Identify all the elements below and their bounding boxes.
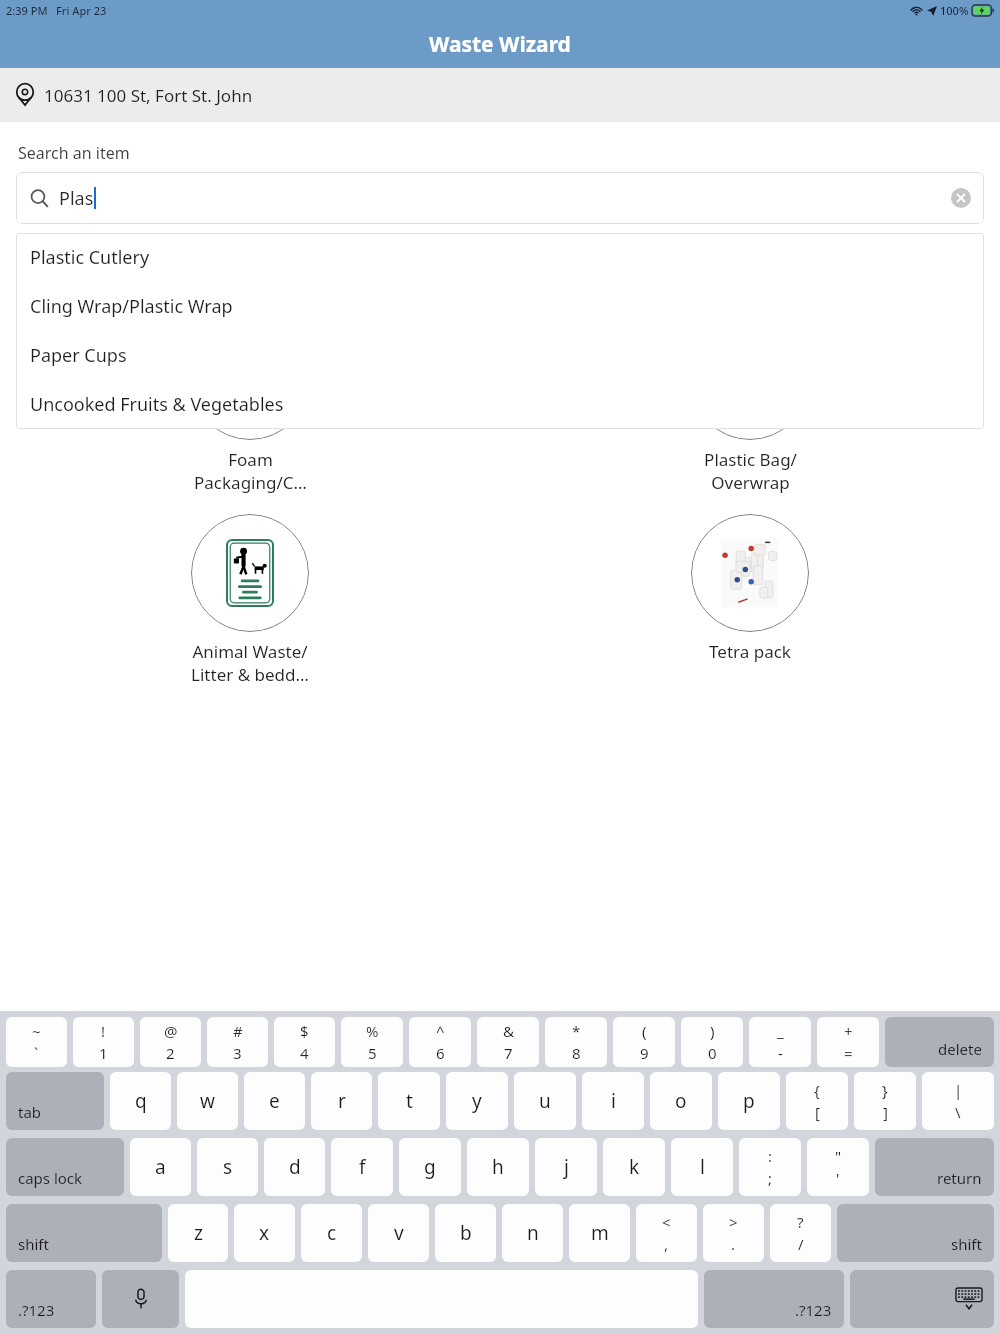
button[interactable]: > [703, 1204, 764, 1262]
staticText: v [394, 1220, 404, 1246]
button[interactable]: ~ [6, 1017, 67, 1067]
button[interactable]: & [477, 1017, 539, 1067]
button[interactable]: k [603, 1138, 665, 1196]
button[interactable]: 10631 100 St, Fort St. John [0, 68, 1000, 122]
button[interactable]: f [331, 1138, 393, 1196]
button[interactable]: v [368, 1204, 429, 1262]
staticText: l [700, 1154, 705, 1180]
button[interactable]: r [311, 1072, 372, 1130]
staticText: q [135, 1088, 147, 1114]
button[interactable]: m [569, 1204, 630, 1262]
button[interactable]: z [168, 1204, 228, 1262]
button[interactable]: Cling Wrap/Plastic Wrap [16, 282, 984, 331]
staticText: o [675, 1088, 687, 1114]
button[interactable]: Uncooked Fruits & Vegetables [16, 380, 984, 429]
button[interactable]: Plastic Cutlery [16, 233, 984, 282]
button[interactable]: Plas [16, 172, 984, 224]
button[interactable]: ^ [409, 1017, 471, 1067]
staticText: p [743, 1088, 755, 1114]
button[interactable]: Dictation [102, 1270, 179, 1328]
staticText: Packaging/C… [194, 471, 307, 494]
button[interactable]: p [718, 1072, 780, 1130]
staticText: [ [815, 1102, 820, 1122]
button[interactable]: delete [885, 1017, 994, 1067]
button[interactable]: c [301, 1204, 362, 1262]
staticText: _ [777, 1021, 784, 1041]
button[interactable]: l [671, 1138, 733, 1196]
staticText: ! [101, 1021, 106, 1041]
staticText: ( [642, 1021, 647, 1041]
button[interactable]: caps lock [6, 1138, 124, 1196]
button[interactable]: e [244, 1072, 305, 1130]
button[interactable]: d [264, 1138, 325, 1196]
button[interactable]: n [502, 1204, 563, 1262]
button[interactable]: shift [837, 1204, 994, 1262]
button[interactable]: ( [613, 1017, 675, 1067]
staticText: ~ [32, 1021, 41, 1041]
staticText: & [503, 1021, 514, 1041]
button[interactable]: tab [6, 1072, 104, 1130]
staticText: | [954, 1080, 963, 1100]
button[interactable]: x [234, 1204, 295, 1262]
button[interactable]: b [435, 1204, 496, 1262]
staticText: t [406, 1088, 413, 1114]
button[interactable]: Plastic Bag/ [650, 322, 850, 494]
button[interactable]: : [739, 1138, 801, 1196]
staticText: ? [797, 1212, 804, 1232]
staticText: ] [883, 1102, 888, 1122]
button[interactable]: @ [140, 1017, 201, 1067]
button[interactable]: < [636, 1204, 697, 1262]
staticText: Foam [228, 448, 273, 471]
button[interactable]: u [514, 1072, 576, 1130]
staticText: i [611, 1088, 616, 1114]
button[interactable]: j [535, 1138, 597, 1196]
staticText: c [327, 1220, 337, 1246]
staticText: d [289, 1154, 301, 1180]
button[interactable]: Tetra pack [650, 514, 850, 663]
staticText: Tetra pack [709, 640, 791, 663]
staticText: e [269, 1088, 280, 1114]
staticText: . [731, 1234, 736, 1254]
button[interactable]: .?123 [704, 1270, 844, 1328]
button[interactable]: * [545, 1017, 607, 1067]
button[interactable]: ! [73, 1017, 134, 1067]
button[interactable]: Clear search [948, 185, 974, 211]
button[interactable]: Animal Waste/ [150, 514, 350, 686]
staticText: Cling Wrap/Plastic Wrap [30, 294, 233, 319]
button[interactable]: Hide keyboard [850, 1270, 994, 1328]
button[interactable]: Paper Cups [16, 331, 984, 380]
button[interactable]: " [807, 1138, 869, 1196]
button[interactable]: ? [770, 1204, 831, 1262]
button[interactable]: _ [749, 1017, 811, 1067]
button[interactable]: $ [274, 1017, 335, 1067]
button[interactable]: | [922, 1072, 994, 1130]
button[interactable]: # [207, 1017, 268, 1067]
button[interactable]: % [341, 1017, 403, 1067]
button[interactable]: g [399, 1138, 461, 1196]
button[interactable]: { [786, 1072, 848, 1130]
button[interactable]: i [582, 1072, 644, 1130]
button[interactable]: return [875, 1138, 994, 1196]
button[interactable]: shift [6, 1204, 162, 1262]
staticText: k [629, 1154, 640, 1180]
staticText: 100% [940, 3, 969, 18]
button[interactable]: h [467, 1138, 529, 1196]
staticText: 6 [436, 1043, 445, 1063]
button[interactable]: Foam [150, 322, 350, 494]
staticText: } [882, 1080, 888, 1100]
button[interactable]: + [817, 1017, 879, 1067]
button[interactable]: s [197, 1138, 258, 1196]
button[interactable]: t [378, 1072, 440, 1130]
button[interactable]: y [446, 1072, 508, 1130]
button[interactable]: w [177, 1072, 238, 1130]
staticText: Plastic Bag/ [704, 448, 797, 471]
staticText: ' [836, 1168, 840, 1188]
button[interactable]: q [110, 1072, 171, 1130]
button[interactable]: ) [681, 1017, 743, 1067]
staticText: Search an item [18, 142, 130, 164]
button[interactable]: } [854, 1072, 916, 1130]
button[interactable]: a [130, 1138, 191, 1196]
button[interactable]: .?123 [6, 1270, 96, 1328]
button[interactable]: o [650, 1072, 712, 1130]
